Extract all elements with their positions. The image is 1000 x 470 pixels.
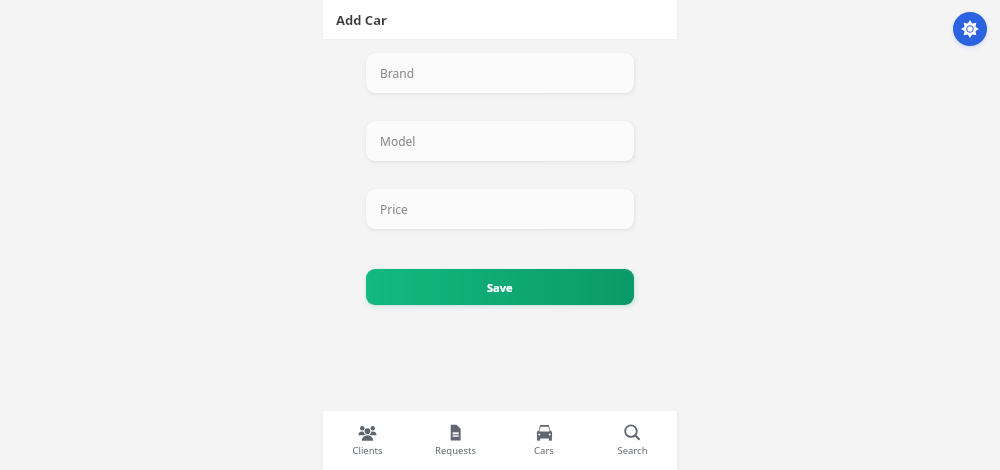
staticText: Brand [380,65,415,81]
button[interactable]: Price [366,189,634,229]
button[interactable]: Clients [323,411,411,470]
staticText: Search [617,444,648,457]
button[interactable]: Requests [411,411,499,470]
button[interactable]: Add Car [323,0,677,39]
staticText: Cars [534,444,554,457]
staticText: Requests [435,444,476,457]
staticText: Model [380,133,416,149]
staticText: Clients [352,444,383,457]
staticText: Price [380,201,408,217]
button[interactable]: Search [588,411,677,470]
button[interactable]: Cars [499,411,588,470]
button[interactable]: Brand [366,53,634,93]
staticText: Save [487,280,513,295]
button[interactable]: Model [366,121,634,161]
button[interactable]: Save [366,269,634,305]
button[interactable]: Settings [953,12,987,46]
staticText: Add Car [336,11,387,29]
